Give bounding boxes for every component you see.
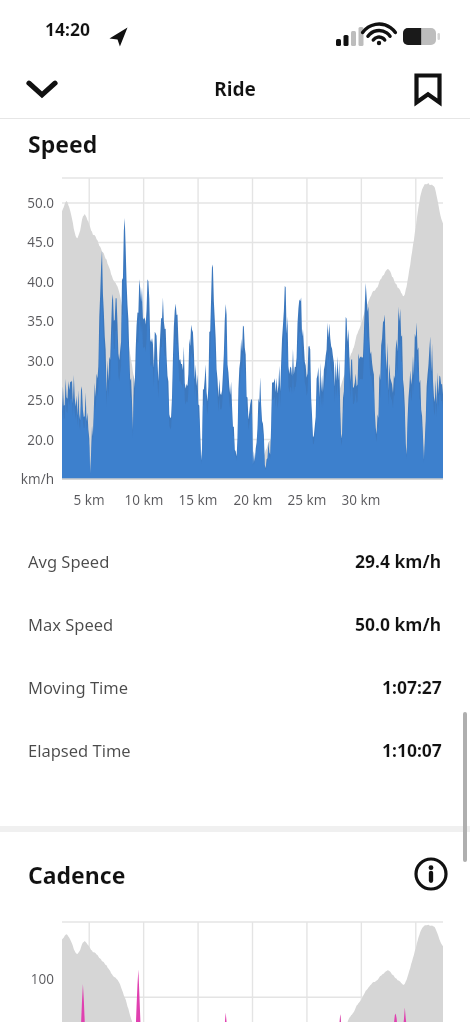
staticText: 30.0 (0, 352, 54, 370)
staticText: 20.0 (0, 431, 54, 449)
staticText: Speed (28, 128, 98, 159)
button[interactable]: Moving Time (0, 655, 470, 718)
staticText: Avg Speed (28, 550, 110, 572)
staticText: 50.0 km/h (355, 612, 442, 636)
staticText: 5 km (57, 491, 121, 509)
staticText: 29.4 km/h (355, 549, 442, 573)
staticText: 35.0 (0, 312, 54, 330)
staticText: Elapsed Time (28, 739, 131, 761)
button[interactable]: Info (406, 849, 456, 899)
staticText: 1:10:07 (382, 738, 442, 762)
staticText: 15 km (166, 491, 230, 509)
staticText: km/h (0, 470, 54, 488)
staticText: 40.0 (0, 273, 54, 291)
staticText: 25.0 (0, 391, 54, 409)
button[interactable]: Elapsed Time (0, 718, 470, 781)
button[interactable]: Avg Speed (0, 529, 470, 592)
staticText: Max Speed (28, 613, 114, 635)
staticText: 45.0 (0, 233, 54, 251)
staticText: 1:07:27 (382, 675, 442, 699)
button[interactable]: Save (400, 61, 456, 117)
staticText: 20 km (221, 491, 285, 509)
staticText: 10 km (112, 491, 176, 509)
button[interactable]: Max Speed (0, 592, 470, 655)
staticText: Ride (214, 76, 256, 102)
staticText: 30 km (329, 491, 393, 509)
staticText: Moving Time (28, 676, 129, 698)
button[interactable]: Collapse (14, 61, 70, 117)
staticText: Cadence (28, 859, 126, 890)
staticText: 25 km (275, 491, 339, 509)
staticText: 50.0 (0, 194, 54, 212)
staticText: 100 (0, 970, 54, 988)
staticText: 14:20 (45, 17, 90, 41)
